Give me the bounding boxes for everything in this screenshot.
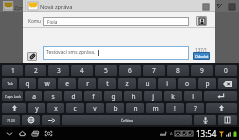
staticText: p [205,79,210,88]
staticText: e [65,79,69,88]
button[interactable]: Nabídka [202,3,209,10]
button[interactable]: a [25,91,42,101]
button[interactable]: menu [218,115,237,125]
button[interactable]: Vybrat kontakt [196,16,207,26]
button[interactable]: bksp [218,78,237,89]
staticText: 1 [11,66,15,75]
staticText: l [192,92,194,101]
button[interactable]: o [178,78,196,89]
button[interactable]: f [84,91,102,101]
button[interactable]: y [28,103,45,113]
button[interactable]: 8 [167,65,189,76]
button[interactable]: g [104,91,122,101]
button[interactable]: Zpět na Zprávy [3,1,13,11]
staticText: q [25,79,30,88]
button[interactable]: mic [194,115,216,125]
staticText: 7 [152,66,156,75]
staticText: z [125,79,129,88]
button[interactable]: Odeslat [193,52,210,60]
staticText: 3 [57,66,61,75]
button[interactable]: 1 [2,65,23,76]
button[interactable]: p [198,78,216,89]
button[interactable]: shift [2,103,26,113]
button[interactable]: Testovací sms zpráva. [43,46,189,60]
button[interactable]: v [86,103,104,113]
button[interactable]: j [144,91,162,101]
staticText: a [32,92,36,101]
button[interactable]: t [98,78,116,89]
staticText: s [51,92,55,101]
staticText: f [92,92,95,101]
button[interactable]: 0 [215,65,237,76]
button[interactable]: 2 [25,65,46,76]
button[interactable]: 9 [191,65,213,76]
button[interactable]: enter [204,91,237,101]
staticText: 9 [200,66,204,75]
button[interactable]: ! [166,103,184,113]
button[interactable]: e [58,78,76,89]
button[interactable]: Skrýt klávesnici [5,129,14,138]
button[interactable]: shift [206,103,237,113]
staticText: 2 [34,66,38,75]
button[interactable]: x [47,103,64,113]
button[interactable]: 6 [119,65,141,76]
button[interactable]: 4 [71,65,93,76]
staticText: ? [194,104,197,113]
staticText: 13:54 [196,128,217,139]
button[interactable]: d [64,91,82,101]
staticText: i [166,79,168,88]
button[interactable]: Rozbalit [216,3,222,9]
staticText: Zpr [14,4,23,11]
staticText: t [106,79,109,88]
button[interactable]: Nabídka [228,3,235,10]
staticText: ! [174,104,176,113]
staticText: w [44,79,50,88]
staticText: 137/1 [195,47,208,53]
staticText: y [35,104,39,113]
button[interactable]: ? [186,103,204,113]
staticText: Fiola [47,19,58,25]
button[interactable]: globe [22,115,40,125]
button[interactable]: Fiola [43,17,189,26]
button[interactable]: i [158,78,176,89]
button[interactable]: w [38,78,56,89]
staticText: h [131,92,136,101]
button[interactable]: r [78,78,96,89]
button[interactable]: Domů [18,129,27,138]
staticText: x [54,104,58,113]
button[interactable]: 3 [48,65,69,76]
button[interactable]: Caps Lock [2,91,23,101]
button[interactable]: z [118,78,136,89]
button[interactable]: Snímek obrazovky [44,129,53,138]
button[interactable]: n [126,103,144,113]
button[interactable]: c [66,103,84,113]
button[interactable]: Poslední aplikace [31,129,40,138]
button[interactable]: Čeština [62,115,192,125]
staticText: m [152,104,159,113]
button[interactable]: Tab [2,78,17,89]
staticText: u [145,79,150,88]
staticText: o [185,79,189,88]
staticText: d [71,92,76,101]
button[interactable]: 5 [95,65,117,76]
button[interactable]: u [138,78,156,89]
button[interactable]: ?123 [2,115,20,125]
button[interactable]: b [106,103,124,113]
staticText: Komu [28,18,42,24]
button[interactable]: l [184,91,202,101]
staticText: Testovací sms zpráva. [46,49,96,56]
button[interactable]: Přidat přílohu [27,52,37,61]
button[interactable]: m [146,103,164,113]
button[interactable]: h [124,91,142,101]
button[interactable]: q [19,78,36,89]
staticText: 5 [104,66,108,75]
button[interactable]: s [44,91,62,101]
staticText: 4 [80,66,84,75]
button[interactable]: 7 [143,65,165,76]
staticText: n [133,104,138,113]
button[interactable]: smile [42,115,60,125]
staticText: Tab [7,81,13,86]
staticText: 6 [128,66,132,75]
staticText: b [113,104,118,113]
button[interactable]: k [164,91,182,101]
